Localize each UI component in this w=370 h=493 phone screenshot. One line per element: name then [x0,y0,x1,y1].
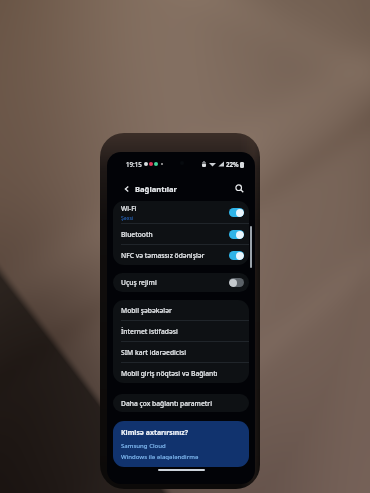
staticText: SIM kart idarəedicisi [121,348,186,357]
staticText: Şəxsi [121,214,134,221]
staticText: NFC və təmassız ödənişlər [121,251,205,260]
button[interactable]: On [229,251,244,260]
staticText: Bluetooth [121,230,153,239]
staticText: Windows ilə əlaqələndirmə [121,453,199,461]
button[interactable]: Wi-Fi [113,201,249,223]
button[interactable]: Mobil şəbəkələr [113,300,249,320]
button[interactable]: On [229,208,244,217]
button[interactable]: SIM kart idarəedicisi [113,342,249,362]
staticText: 22% [226,160,239,168]
staticText: Wi-Fi [121,204,137,213]
staticText: Samsung Cloud [121,442,166,450]
staticText: Uçuş rejimi [121,278,157,287]
staticText: Mobil şəbəkələr [121,306,172,315]
button[interactable]: Search [233,182,246,195]
button[interactable]: Uçuş rejimi [113,273,249,292]
button[interactable]: İnternet istifadəsi [113,321,249,341]
other: Back [123,185,131,193]
button[interactable]: On [229,230,244,239]
button[interactable]: Mobil giriş nöqtəsi və Bağlantı [113,363,249,383]
staticText: Kimisə axtarırsınız? [121,428,188,437]
button[interactable]: Back [107,181,183,197]
staticText: Bağlantılar [135,184,177,194]
staticText: Daha çox bağlantı parametri [121,399,212,408]
staticText: 19:15 [126,160,142,168]
button[interactable]: Kimisə axtarırsınız? [113,421,249,467]
button[interactable]: NFC və təmassız ödənişlər [113,245,249,265]
staticText: Mobil giriş nöqtəsi və Bağlantı [121,369,218,378]
button[interactable]: Bluetooth [113,224,249,244]
button[interactable]: Daha çox bağlantı parametri [113,394,249,412]
staticText: İnternet istifadəsi [121,327,178,336]
button[interactable]: Off [229,278,244,287]
